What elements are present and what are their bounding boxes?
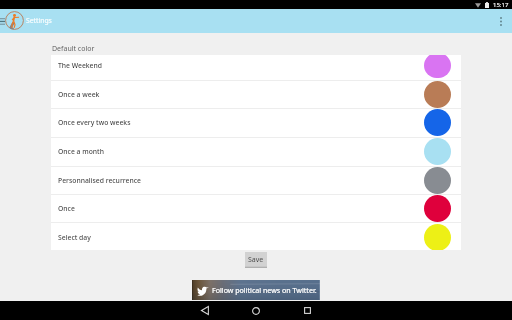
- staticText: The Weekend: [58, 61, 102, 70]
- button[interactable]: Select day: [51, 222, 461, 250]
- staticText: Default color: [52, 44, 95, 54]
- button[interactable]: Back: [187, 301, 223, 320]
- staticText: Once: [58, 204, 75, 213]
- button[interactable]: Recent apps: [289, 301, 325, 320]
- staticText: Once a month: [58, 147, 104, 156]
- staticText: 15:17: [493, 1, 509, 9]
- button[interactable]: Once every two weeks: [51, 108, 461, 137]
- button[interactable]: Once a week: [51, 80, 461, 109]
- button[interactable]: Once: [51, 194, 461, 222]
- button[interactable]: Save: [245, 252, 267, 268]
- button[interactable]: The Weekend: [51, 55, 461, 80]
- button[interactable]: Once a month: [51, 137, 461, 166]
- staticText: Once every two weeks: [58, 118, 131, 127]
- staticText: Settings: [26, 16, 52, 25]
- staticText: Follow political news on Twitter.: [212, 285, 317, 295]
- staticText: Select day: [58, 233, 91, 242]
- staticText: Once a week: [58, 90, 100, 99]
- staticText: Personnalised recurrence: [58, 176, 141, 185]
- button[interactable]: Home: [238, 301, 274, 320]
- button[interactable]: Personnalised recurrence: [51, 166, 461, 195]
- button[interactable]: Follow political news on Twitter.: [192, 280, 320, 300]
- button[interactable]: More options: [490, 9, 512, 33]
- staticText: Save: [248, 255, 264, 265]
- button[interactable]: Open navigation drawer: [0, 9, 5, 33]
